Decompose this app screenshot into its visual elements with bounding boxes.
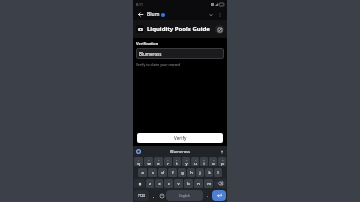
- staticText: r: [167, 161, 169, 166]
- button[interactable]: m: [204, 179, 213, 188]
- button[interactable]: Keyboard tools: [135, 148, 142, 155]
- staticText: Verify to claim your reward: [136, 62, 181, 67]
- staticText: k: [208, 170, 211, 175]
- staticText: 4: [167, 158, 169, 161]
- button[interactable]: j: [196, 168, 204, 177]
- button[interactable]: Shift: [134, 179, 145, 188]
- button[interactable]: Open external link: [215, 25, 224, 34]
- staticText: c: [168, 181, 170, 186]
- staticText: o: [212, 161, 215, 166]
- staticText: i: [203, 161, 205, 166]
- button[interactable]: h: [187, 168, 195, 177]
- staticText: ,: [153, 193, 155, 198]
- staticText: h: [190, 170, 193, 175]
- button[interactable]: k: [205, 168, 213, 177]
- staticText: e: [157, 161, 160, 166]
- button[interactable]: Blumeross: [136, 48, 224, 59]
- button[interactable]: Comma: [150, 190, 157, 201]
- button[interactable]: 2: [144, 157, 153, 166]
- staticText: Blumeross: [139, 51, 162, 57]
- button[interactable]: 6: [182, 157, 190, 166]
- button[interactable]: 7: [191, 157, 199, 166]
- button[interactable]: s: [148, 168, 157, 177]
- staticText: Verification: [136, 41, 159, 46]
- staticText: d: [161, 170, 164, 175]
- staticText: u: [194, 161, 197, 166]
- staticText: .: [207, 193, 209, 198]
- button[interactable]: English: [166, 190, 203, 201]
- button[interactable]: a: [138, 168, 147, 177]
- button[interactable]: b: [184, 179, 193, 188]
- staticText: x: [158, 181, 161, 186]
- staticText: w: [147, 161, 151, 166]
- staticText: 8:11: [136, 2, 143, 7]
- staticText: Blum: [147, 11, 160, 18]
- button[interactable]: Backspace: [214, 179, 226, 188]
- button[interactable]: 8: [200, 157, 208, 166]
- button[interactable]: c: [164, 179, 173, 188]
- staticText: Verify: [174, 135, 187, 141]
- button[interactable]: l: [214, 168, 222, 177]
- staticText: Liquidity Pools Guide: [147, 25, 213, 33]
- staticText: j: [199, 170, 201, 175]
- button[interactable]: v: [174, 179, 183, 188]
- staticText: y: [185, 161, 188, 166]
- button[interactable]: Blumeross: [170, 149, 190, 154]
- button[interactable]: Voice input: [218, 148, 225, 155]
- button[interactable]: 9: [209, 157, 217, 166]
- staticText: 7: [195, 158, 197, 161]
- button[interactable]: 5: [173, 157, 181, 166]
- button[interactable]: Video: [136, 25, 144, 33]
- staticText: v: [177, 181, 180, 186]
- button[interactable]: Enter: [212, 190, 226, 201]
- staticText: n: [197, 181, 200, 186]
- button[interactable]: Expand: [206, 10, 215, 19]
- button[interactable]: ?123: [134, 190, 149, 201]
- button[interactable]: x: [155, 179, 163, 188]
- button[interactable]: n: [194, 179, 203, 188]
- button[interactable]: 4: [164, 157, 172, 166]
- staticText: ?123: [138, 194, 145, 198]
- staticText: s: [152, 170, 154, 175]
- staticText: q: [137, 161, 140, 166]
- staticText: 5: [176, 158, 178, 161]
- button[interactable]: Period: [204, 190, 211, 201]
- staticText: 6: [186, 158, 188, 161]
- button[interactable]: d: [158, 168, 167, 177]
- button[interactable]: Verify: [137, 133, 223, 143]
- staticText: g: [181, 170, 184, 175]
- staticText: t: [176, 161, 178, 166]
- staticText: 9: [213, 158, 215, 161]
- staticText: 3: [158, 158, 160, 161]
- staticText: English: [179, 194, 190, 198]
- staticText: 1: [138, 158, 140, 161]
- staticText: l: [217, 170, 219, 175]
- staticText: f: [172, 170, 174, 175]
- button[interactable]: Emoji: [158, 190, 165, 201]
- button[interactable]: 0: [218, 157, 226, 166]
- button[interactable]: 3: [154, 157, 163, 166]
- button[interactable]: z: [146, 179, 154, 188]
- staticText: b: [187, 181, 190, 186]
- staticText: p: [221, 161, 224, 166]
- staticText: a: [141, 170, 144, 175]
- button[interactable]: More options: [215, 10, 224, 19]
- staticText: 8: [203, 158, 205, 161]
- button[interactable]: g: [178, 168, 186, 177]
- staticText: m: [207, 181, 211, 186]
- button[interactable]: Back: [136, 10, 145, 19]
- staticText: 2: [148, 158, 150, 161]
- button[interactable]: 1: [134, 157, 143, 166]
- button[interactable]: f: [168, 168, 177, 177]
- staticText: z: [149, 181, 151, 186]
- staticText: 0: [222, 158, 224, 161]
